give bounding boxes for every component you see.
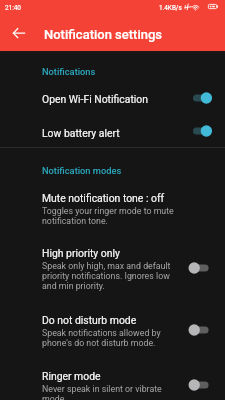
staticText: Notification modes <box>42 165 122 176</box>
button[interactable]: Do not disturb mode <box>0 314 225 348</box>
staticText: Low battery alert <box>42 127 120 139</box>
button[interactable]: Do not disturb mode toggle <box>187 316 221 344</box>
staticText: Speak notifications allowed by phone's d… <box>42 328 161 348</box>
button[interactable]: Low battery alert toggle <box>187 117 221 145</box>
staticText: Open Wi-Fi Notification <box>42 93 148 105</box>
staticText: Toggles your ringer mode to mute notific… <box>42 206 174 226</box>
button[interactable]: Mute notification tone : off <box>0 192 225 226</box>
button[interactable]: Ringer mode <box>0 370 225 400</box>
button[interactable]: High priority only toggle <box>187 254 221 282</box>
staticText: Mute notification tone : off <box>42 192 165 204</box>
button[interactable]: Open Wi-Fi Notification <box>0 93 225 105</box>
staticText: Speak only high, max and default priorit… <box>42 261 171 291</box>
staticText: 21:40 <box>5 4 21 12</box>
button[interactable]: Ringer mode toggle <box>187 371 221 399</box>
button[interactable]: Back <box>5 19 33 47</box>
button[interactable]: Open Wi-Fi Notification toggle <box>187 84 221 112</box>
staticText: Do not disturb mode <box>42 314 137 326</box>
staticText: Notifications <box>42 66 96 77</box>
staticText: Never speak in silent or vibrate mode <box>42 384 162 400</box>
staticText: Ringer mode <box>42 370 101 382</box>
button[interactable]: High priority only <box>0 247 225 291</box>
staticText: High priority only <box>42 247 120 259</box>
button[interactable]: Low battery alert <box>0 127 225 139</box>
staticText: 1.4KB/s <box>159 4 182 12</box>
staticText: Notification settings <box>44 27 163 42</box>
